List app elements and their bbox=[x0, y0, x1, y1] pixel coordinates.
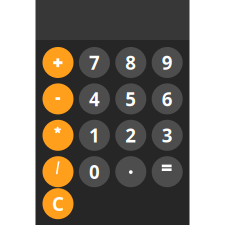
button[interactable]: 8 bbox=[115, 47, 146, 78]
staticText: 8 bbox=[125, 50, 136, 75]
button[interactable]: 3 bbox=[152, 120, 183, 151]
button[interactable]: 2 bbox=[115, 120, 146, 151]
button[interactable]: Equals bbox=[152, 156, 183, 187]
button[interactable]: 5 bbox=[115, 83, 146, 114]
staticText: 4 bbox=[89, 86, 100, 111]
staticText: 5 bbox=[125, 86, 136, 111]
staticText: C bbox=[52, 191, 64, 216]
staticText: 9 bbox=[162, 50, 173, 75]
button[interactable]: Plus bbox=[42, 47, 73, 78]
button[interactable]: 4 bbox=[79, 83, 110, 114]
button[interactable]: 9 bbox=[152, 47, 183, 78]
staticText: 7 bbox=[89, 50, 100, 75]
staticText: 0 bbox=[89, 159, 100, 184]
button[interactable]: Multiply bbox=[42, 120, 73, 151]
button[interactable]: 1 bbox=[79, 120, 110, 151]
staticText: 6 bbox=[162, 86, 173, 111]
staticText: 1 bbox=[89, 123, 100, 148]
staticText: 2 bbox=[125, 123, 136, 148]
button[interactable]: 0 bbox=[79, 156, 110, 187]
button[interactable]: Minus bbox=[42, 83, 73, 114]
button[interactable]: 7 bbox=[79, 47, 110, 78]
button[interactable]: Divide bbox=[42, 156, 73, 187]
button[interactable]: C bbox=[42, 188, 73, 219]
button[interactable]: Decimal point bbox=[115, 156, 146, 187]
button[interactable]: 6 bbox=[152, 83, 183, 114]
staticText: 3 bbox=[162, 123, 173, 148]
